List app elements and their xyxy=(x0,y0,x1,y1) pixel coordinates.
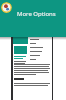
button[interactable]: App logo xyxy=(0,0,66,37)
button[interactable]: App logo xyxy=(1,2,12,13)
staticText: More Options xyxy=(17,10,56,18)
